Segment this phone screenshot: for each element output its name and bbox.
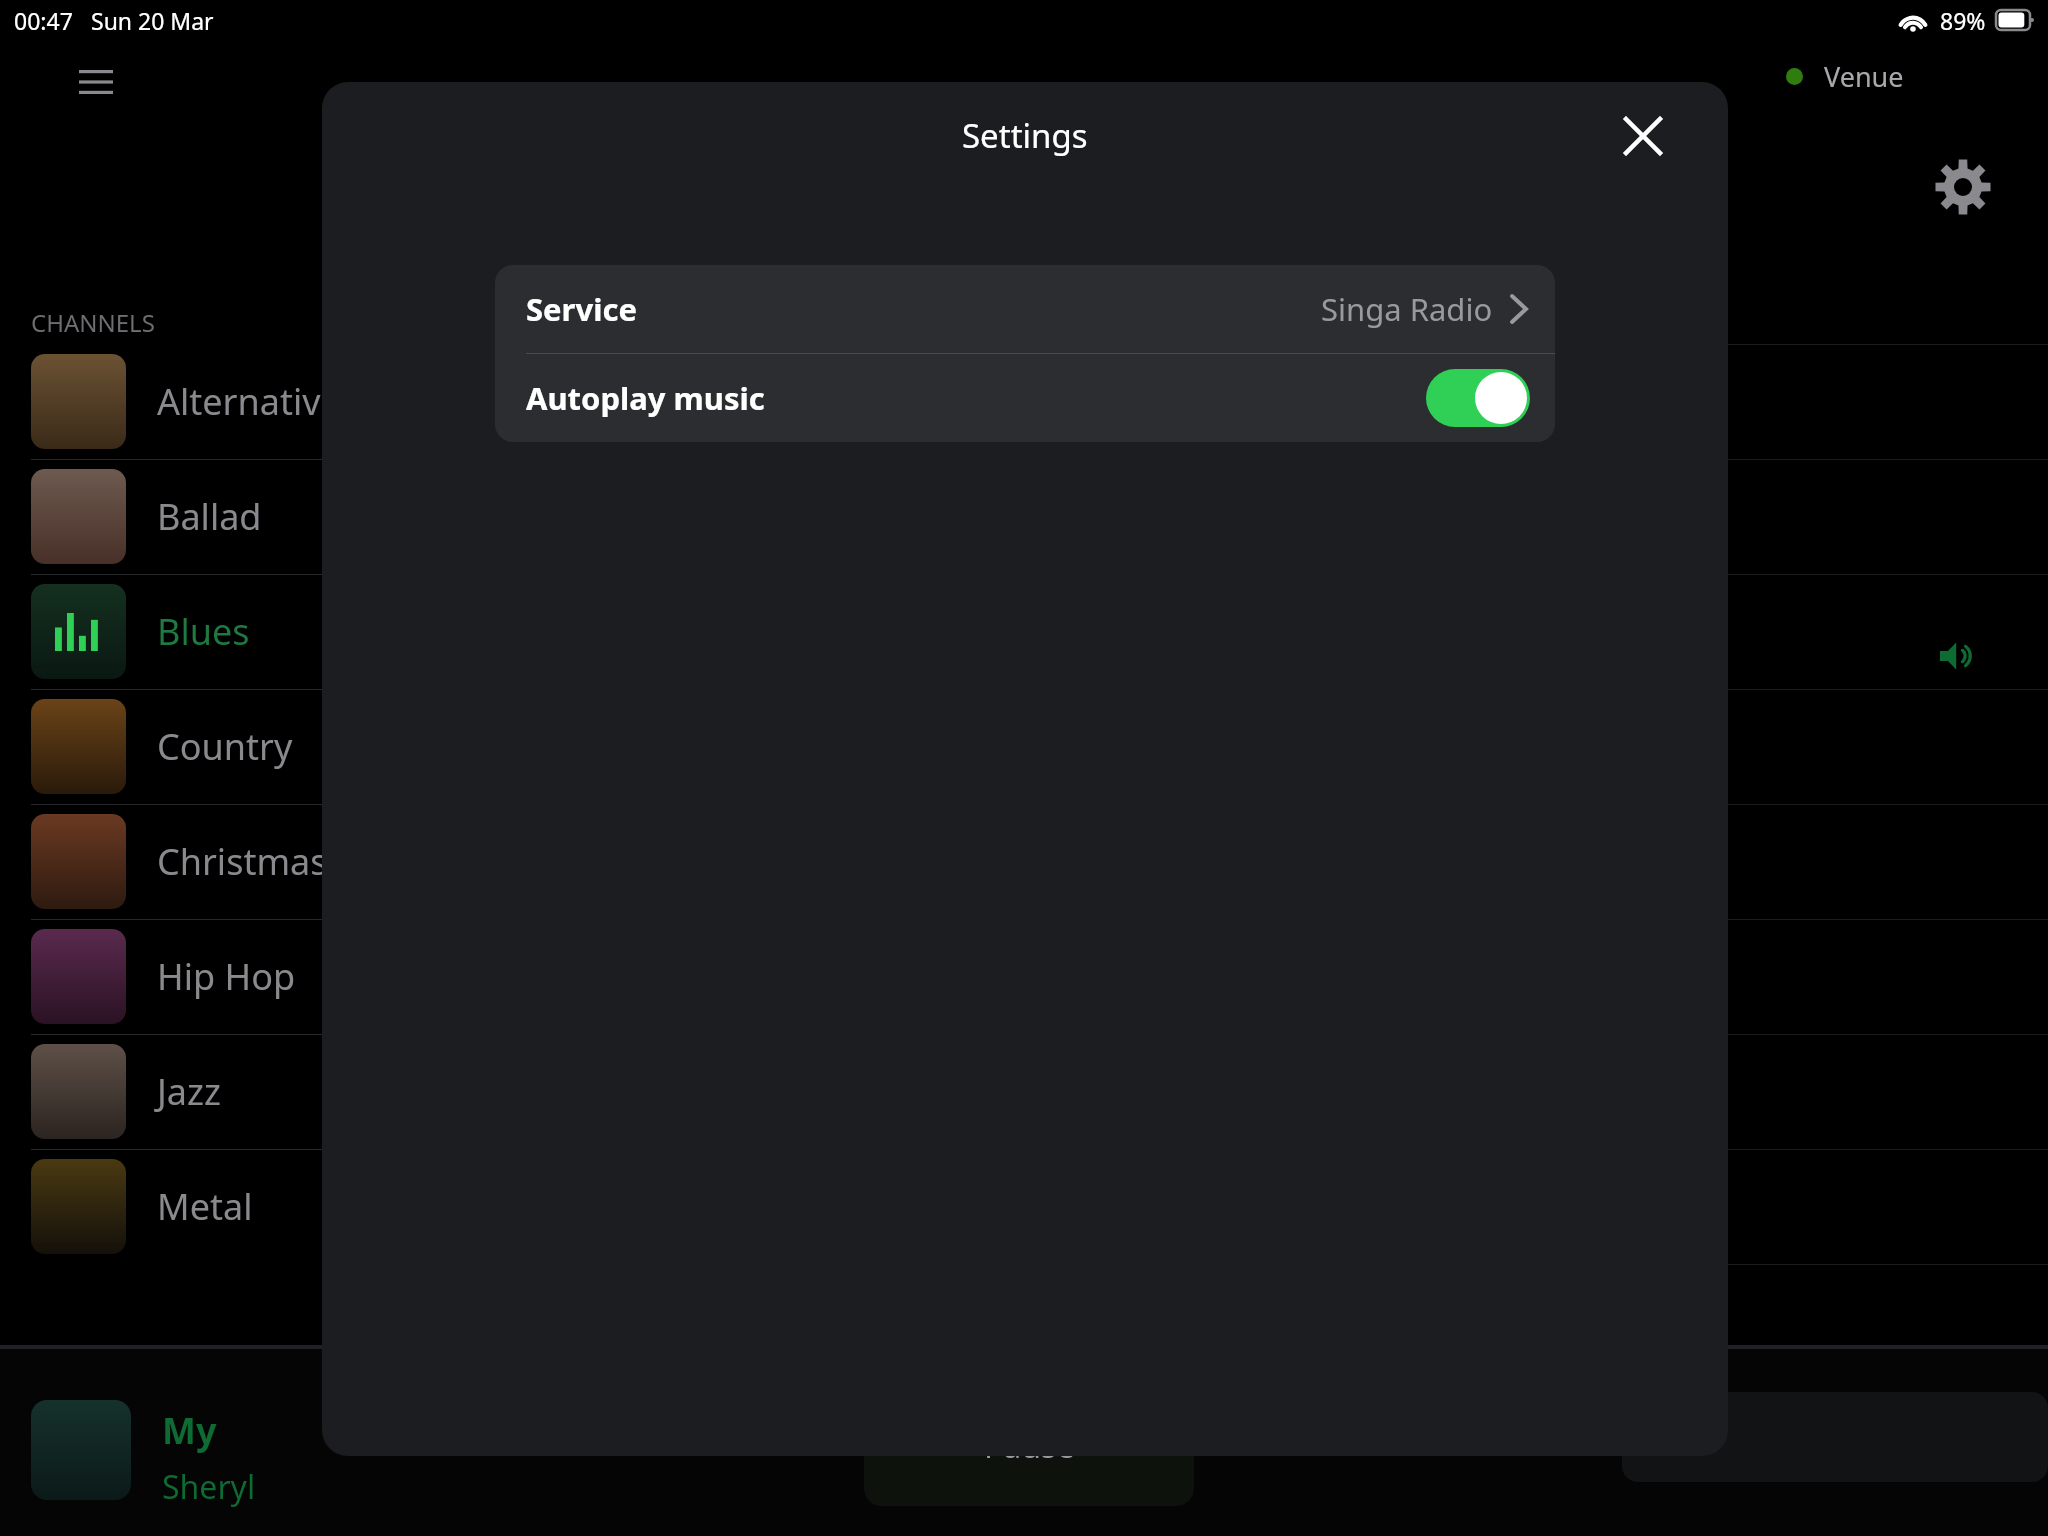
staticText: Pause: [984, 1424, 1075, 1468]
button[interactable]: Pause: [864, 1420, 1194, 1506]
button[interactable]: Ballad: [0, 459, 330, 574]
staticText: Settings: [962, 113, 1088, 158]
button[interactable]: My Favorite: [0, 1368, 330, 1536]
staticText: Service: [526, 288, 637, 330]
staticText: Ballad: [157, 492, 262, 541]
button[interactable]: Metal: [0, 1149, 330, 1264]
staticText: Sun 20 Mar: [91, 5, 214, 36]
staticText: Country: [157, 722, 293, 771]
staticText: Autoplay music: [526, 377, 765, 419]
staticText: Blues: [157, 607, 250, 656]
button[interactable]: Menu: [74, 60, 118, 104]
button[interactable]: Alternative: [0, 344, 330, 459]
staticText: 89%: [1940, 5, 1986, 36]
button[interactable]: Christmas: [0, 804, 330, 919]
button[interactable]: Playing on this channel: [1936, 634, 1980, 678]
button[interactable]: Settings: [1928, 152, 1998, 222]
button[interactable]: Country: [0, 689, 330, 804]
staticText: Christmas: [157, 837, 328, 886]
button[interactable]: Hip Hop: [0, 919, 330, 1034]
staticText: Jazz: [157, 1067, 221, 1116]
staticText: Metal: [157, 1182, 253, 1231]
staticText: My Favorite: [162, 1406, 330, 1455]
button[interactable]: [1426, 369, 1530, 427]
staticText: Singa Radio: [1321, 288, 1493, 330]
staticText: CHANNELS: [31, 306, 155, 339]
button[interactable]: Close: [1607, 100, 1679, 172]
staticText: Venue: [1824, 58, 1904, 94]
button[interactable]: Service: [495, 265, 1555, 353]
staticText: 00:47: [14, 5, 73, 36]
staticText: Hip Hop: [157, 952, 296, 1001]
button[interactable]: Autoplay music: [495, 354, 1555, 442]
staticText: Sheryl Crow: [162, 1465, 330, 1509]
button[interactable]: Venue: [1786, 58, 1904, 94]
staticText: Alternative: [157, 377, 330, 426]
button[interactable]: Jazz: [0, 1034, 330, 1149]
button[interactable]: Blues: [0, 574, 330, 689]
